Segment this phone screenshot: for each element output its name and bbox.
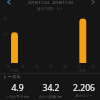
staticText: 24: [6, 65, 10, 69]
staticText: 29: [77, 65, 81, 69]
staticText: 11/30: [78, 69, 86, 73]
staticText: 4.9: [11, 82, 24, 94]
staticText: トータル: [3, 74, 21, 80]
staticText: 26: [35, 65, 39, 69]
staticText: 34.2: [42, 82, 60, 94]
button[interactable]: 2.206: [67, 82, 100, 98]
staticText: 10: [3, 33, 7, 37]
staticText: 過去7日間・ラン: [37, 6, 63, 11]
staticText: 11/24: [10, 69, 18, 73]
staticText: 2.206: [73, 82, 95, 94]
button[interactable]: Next week: [86, 0, 99, 8]
staticText: 20: [3, 17, 7, 21]
staticText: 合計の距離 km: [39, 94, 62, 99]
staticText: 30: [91, 65, 95, 69]
staticText: 28: [63, 65, 67, 69]
staticText: 25: [21, 65, 25, 69]
staticText: 一日の平均 km: [6, 94, 29, 99]
staticText: 27: [49, 65, 53, 69]
button[interactable]: 34.2: [34, 82, 67, 99]
button[interactable]: 4.9: [0, 82, 34, 99]
staticText: 2018/11/24 - 2018/11/30: [28, 0, 73, 5]
staticText: 総カロリー: [75, 94, 93, 98]
button[interactable]: Previous week: [2, 0, 15, 8]
